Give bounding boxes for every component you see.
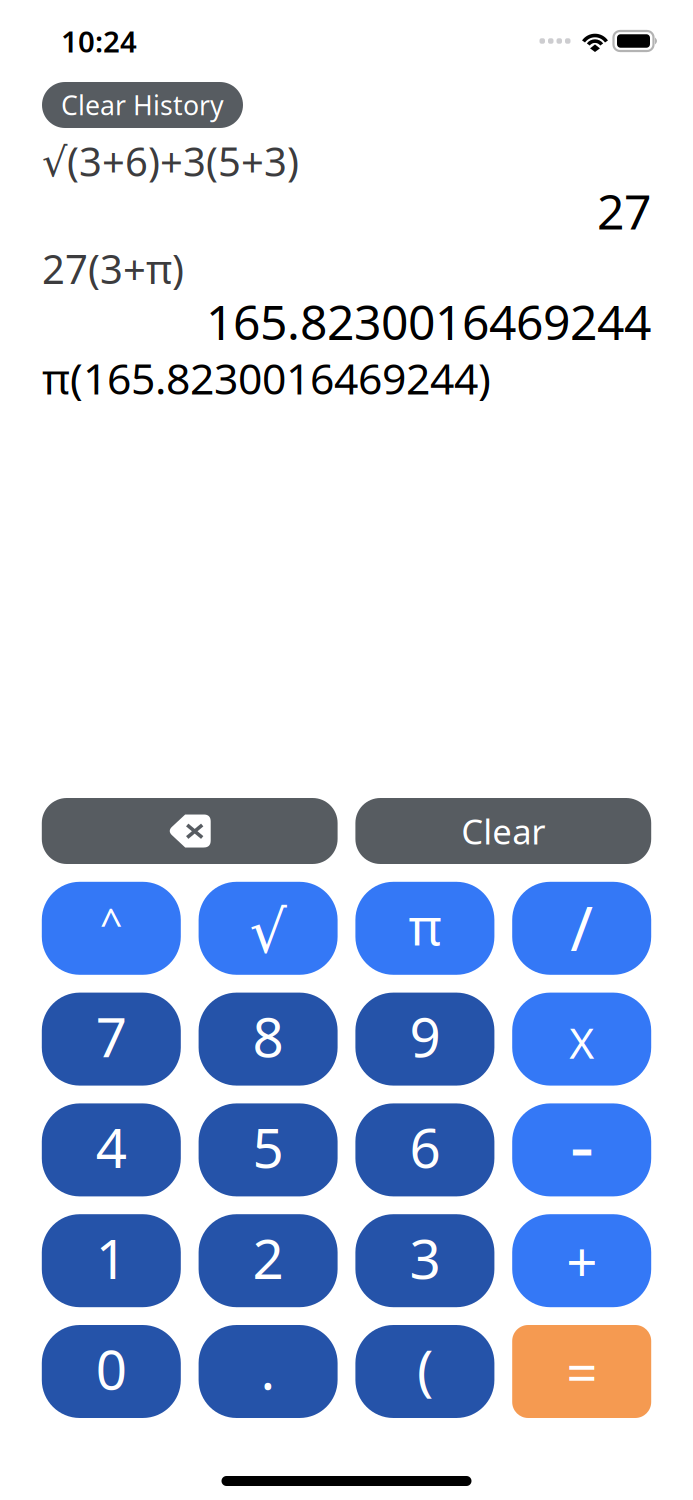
staticText: X [569, 1014, 594, 1070]
button[interactable]: 0 [42, 1325, 181, 1418]
staticText: √(3+6)+3(5+3) [42, 134, 299, 187]
button[interactable]: 4 [42, 1103, 181, 1196]
staticText: 9 [409, 1000, 440, 1072]
button[interactable]: 5 [199, 1103, 338, 1196]
button[interactable]: . [199, 1325, 338, 1418]
button[interactable]: 6 [355, 1103, 494, 1196]
staticText: 8 [253, 1000, 284, 1072]
button[interactable]: = [512, 1325, 651, 1418]
staticText: π [408, 892, 441, 959]
staticText: ( [417, 1332, 433, 1405]
staticText: 2 [253, 1221, 284, 1294]
staticText: Clear [461, 808, 545, 854]
button[interactable]: 9 [355, 993, 494, 1086]
button[interactable]: 3 [355, 1214, 494, 1307]
button[interactable]: ^ [42, 882, 181, 975]
button[interactable]: X [512, 993, 651, 1086]
staticText: 165.8230016469244 [206, 290, 651, 353]
button[interactable]: 7 [42, 993, 181, 1086]
staticText: . [261, 1332, 276, 1405]
button[interactable]: 8 [199, 993, 338, 1086]
staticText: / [570, 887, 593, 968]
staticText: 3 [409, 1221, 440, 1294]
button[interactable]: 1 [42, 1214, 181, 1307]
staticText: 7 [96, 1000, 127, 1072]
staticText: 6 [409, 1111, 440, 1183]
staticText: 1 [96, 1221, 127, 1294]
staticText: π(165.8230016469244) [42, 350, 491, 406]
button[interactable]: / [512, 882, 651, 975]
button[interactable]: Clear History [42, 82, 243, 128]
button[interactable]: ( [355, 1325, 494, 1418]
button[interactable]: Delete [42, 798, 338, 864]
staticText: 5 [253, 1111, 284, 1183]
staticText: = [566, 1335, 597, 1408]
staticText: + [566, 1224, 597, 1297]
button[interactable]: - [512, 1103, 651, 1196]
staticText: 27(3+π) [42, 242, 184, 295]
button[interactable]: 2 [199, 1214, 338, 1307]
staticText: 10:24 [61, 21, 137, 60]
staticText: Clear History [61, 87, 224, 123]
button[interactable]: π [355, 882, 494, 975]
staticText: 27 [597, 179, 651, 243]
button[interactable]: √ [199, 882, 338, 975]
staticText: - [570, 1093, 594, 1194]
staticText: 4 [96, 1111, 127, 1183]
button[interactable]: Clear [355, 798, 651, 864]
button[interactable]: + [512, 1214, 651, 1307]
staticText: √ [250, 899, 287, 966]
staticText: 0 [96, 1332, 127, 1405]
staticText: ^ [100, 896, 123, 949]
